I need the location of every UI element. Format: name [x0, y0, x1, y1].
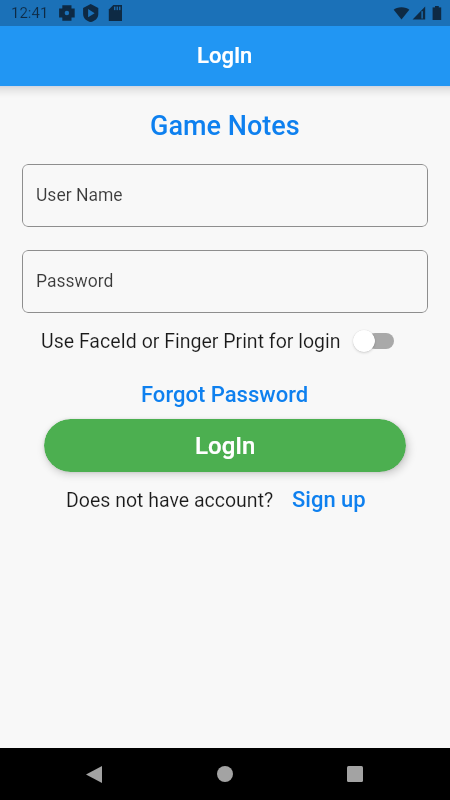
button[interactable]: User Name — [22, 164, 428, 227]
staticText: Forgot Password — [141, 382, 309, 408]
button[interactable]: Use FaceId or Finger Print for login — [353, 329, 394, 353]
button[interactable]: Sign up — [292, 487, 366, 513]
button[interactable]: Password — [22, 250, 428, 313]
staticText: Password — [36, 271, 114, 292]
button[interactable]: Back — [70, 750, 118, 798]
staticText: LogIn — [195, 432, 256, 460]
button[interactable]: Forgot Password — [135, 380, 315, 410]
staticText: Game Notes — [150, 110, 300, 142]
button[interactable]: Recent apps — [331, 750, 379, 798]
button[interactable]: LogIn — [44, 419, 406, 472]
staticText: LogIn — [197, 43, 253, 69]
staticText: User Name — [36, 185, 123, 206]
staticText: Does not have account? — [66, 489, 274, 512]
button[interactable]: Home — [201, 750, 249, 798]
staticText: Sign up — [292, 487, 366, 513]
staticText: Use FaceId or Finger Print for login — [41, 330, 341, 353]
staticText: 12:41 — [11, 4, 49, 22]
